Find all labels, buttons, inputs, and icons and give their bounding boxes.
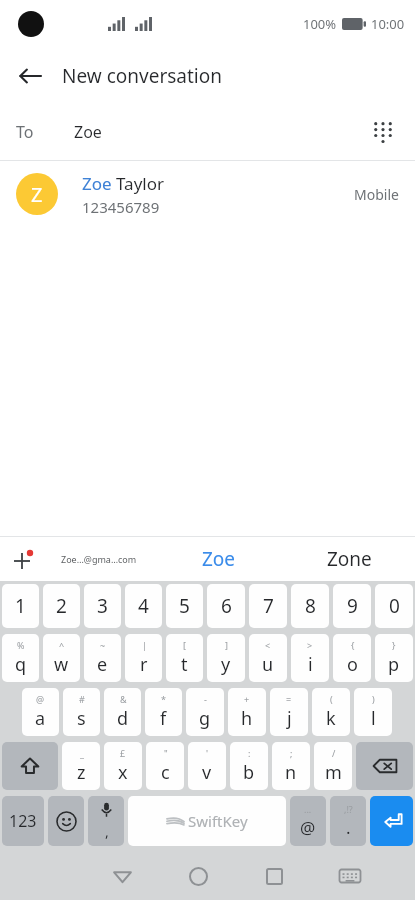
button[interactable]: 0 [375,584,413,628]
staticText: : [248,747,251,759]
button[interactable]: Add [0,537,44,581]
button[interactable]: Emoji [48,796,84,846]
button[interactable]: Dialpad [359,108,407,156]
staticText: 2 [56,593,67,619]
staticText: ,!? [344,803,353,815]
button[interactable]: : [230,742,268,790]
staticText: = [286,693,292,705]
button[interactable]: ' [188,742,226,790]
button[interactable]: 9 [333,584,371,628]
staticText: 1 [15,593,26,619]
button[interactable]: ... [290,796,326,846]
staticText: v [202,760,212,785]
staticText: ^ [59,639,65,651]
button[interactable]: ; [272,742,310,790]
button[interactable]: Send [370,796,413,846]
staticText: } [392,639,396,651]
staticText: Z [31,181,43,208]
button[interactable]: 6 [207,584,245,628]
button[interactable]: 1 [2,584,39,628]
staticText: j [287,706,292,731]
button[interactable]: Back [8,54,52,98]
staticText: % [17,639,25,651]
button[interactable]: | [125,634,162,682]
staticText: To [16,121,34,143]
button[interactable]: Backspace [356,742,413,790]
staticText: 100% [303,15,337,33]
staticText: Zoe [74,121,102,143]
button[interactable]: < [249,634,287,682]
staticText: * [161,693,166,705]
button[interactable]: } [375,634,413,682]
staticText: 6 [221,593,232,619]
staticText: New conversation [62,63,222,89]
staticText: o [347,652,358,677]
button[interactable]: = [270,688,308,736]
staticText: ) [372,693,375,705]
button[interactable]: * [145,688,182,736]
button[interactable]: ( [312,688,350,736]
staticText: # [79,693,85,705]
button[interactable]: " [146,742,184,790]
staticText: 8 [305,593,316,619]
button[interactable]: 5 [166,584,203,628]
button[interactable]: Home [160,852,236,900]
button[interactable]: Shift [2,742,58,790]
button[interactable]: [ [166,634,203,682]
button[interactable]: £ [104,742,142,790]
button[interactable]: _ [62,742,100,790]
staticText: ( [330,693,333,705]
staticText: , [105,822,109,841]
button[interactable]: & [104,688,141,736]
button[interactable]: 8 [291,584,329,628]
button[interactable]: Z [0,161,415,227]
button[interactable]: 4 [125,584,162,628]
staticText: { [351,639,355,651]
button[interactable]: Zoe [154,537,284,581]
staticText: 7 [263,593,274,619]
staticText: + [244,693,250,705]
staticText: m [325,760,342,785]
button[interactable]: ,!? [330,796,366,846]
button[interactable]: % [2,634,39,682]
button[interactable]: ] [207,634,245,682]
button[interactable]: To [0,104,415,160]
button[interactable]: Back [84,852,160,900]
button[interactable]: Recents [236,852,312,900]
button[interactable]: Zoe…@gma…com [44,537,154,581]
button[interactable]: 3 [84,584,121,628]
button[interactable]: 7 [249,584,287,628]
staticText: 123 [9,810,37,832]
staticText: l [371,706,376,731]
staticText: / [332,747,336,759]
staticText: 9 [347,593,358,619]
button[interactable]: # [63,688,100,736]
button[interactable]: @ [22,688,59,736]
staticText: £ [120,747,126,759]
staticText: - [204,693,207,705]
staticText: k [326,706,336,731]
staticText: Zoe…@gma…com [61,553,137,565]
button[interactable]: Space [128,796,286,846]
button[interactable]: 2 [43,584,80,628]
button[interactable]: ~ [84,634,121,682]
staticText: ; [290,747,293,759]
staticText: Zoe Taylor [82,172,165,195]
button[interactable]: > [291,634,329,682]
button[interactable]: - [186,688,224,736]
staticText: i [308,652,313,677]
staticText: w [54,652,69,677]
staticText: Mobile [354,185,399,204]
staticText: < [265,639,271,651]
button[interactable]: ) [354,688,392,736]
button[interactable]: / [314,742,352,790]
button[interactable]: ^ [43,634,80,682]
button[interactable]: 123 [2,796,44,846]
button[interactable]: Hide keyboard [312,852,388,900]
button[interactable]: Zone [284,537,415,581]
staticText: f [160,706,167,731]
staticText: b [243,760,255,785]
button[interactable]: + [228,688,266,736]
button[interactable]: Voice input [88,796,124,846]
button[interactable]: { [333,634,371,682]
